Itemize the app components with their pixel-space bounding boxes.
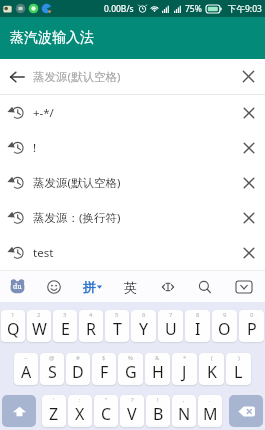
staticText: Q: [7, 318, 20, 340]
button[interactable]: @: [40, 353, 64, 385]
staticText: P: [247, 318, 257, 340]
button[interactable]: Remove item: [232, 235, 265, 270]
button[interactable]: +-*/: [0, 95, 265, 130]
staticText: 8: [196, 311, 200, 319]
staticText: V: [127, 403, 137, 425]
button[interactable]: Back: [0, 59, 265, 94]
button[interactable]: 9: [212, 310, 237, 342]
staticText: Y: [139, 318, 149, 340]
button[interactable]: 拼: [73, 271, 112, 302]
button[interactable]: Clear text: [232, 59, 265, 94]
staticText: du: [13, 282, 22, 292]
button[interactable]: ": [94, 395, 118, 427]
button[interactable]: 蒸发源：(换行符): [0, 200, 265, 235]
button[interactable]: *: [172, 353, 197, 385]
button[interactable]: 3: [53, 310, 77, 342]
button[interactable]: 2: [27, 310, 51, 342]
button[interactable]: (: [199, 353, 224, 385]
button[interactable]: !: [146, 395, 170, 427]
button[interactable]: $: [92, 353, 116, 385]
staticText: 英: [124, 279, 137, 295]
staticText: +-*/: [33, 105, 232, 121]
staticText: 6: [142, 311, 146, 319]
staticText: W: [32, 318, 47, 340]
staticText: ": [105, 396, 108, 404]
staticText: M: [203, 403, 218, 425]
staticText: 0: [250, 311, 254, 319]
button[interactable]: ,: [172, 395, 196, 427]
button[interactable]: #: [66, 353, 90, 385]
staticText: @: [49, 354, 55, 362]
staticText: 75%: [185, 3, 202, 15]
staticText: Z: [49, 403, 59, 425]
staticText: G: [125, 361, 137, 383]
button[interactable]: %: [118, 353, 143, 385]
button[interactable]: Baidu input: [0, 271, 35, 302]
staticText: 7: [169, 311, 173, 319]
staticText: B: [153, 403, 164, 425]
button[interactable]: Remove item: [232, 130, 265, 165]
staticText: E: [61, 318, 70, 340]
button[interactable]: .: [198, 395, 222, 427]
button[interactable]: ): [226, 353, 251, 385]
button[interactable]: Delete: [229, 395, 263, 427]
button[interactable]: &: [145, 353, 170, 385]
button[interactable]: test: [0, 235, 265, 270]
button[interactable]: ~: [14, 353, 38, 385]
staticText: 3: [63, 311, 67, 319]
button[interactable]: Back: [0, 59, 33, 94]
button[interactable]: Search: [186, 271, 223, 302]
staticText: C: [101, 403, 112, 425]
staticText: 5: [115, 311, 119, 319]
button[interactable]: Remove item: [232, 165, 265, 200]
staticText: K: [207, 361, 217, 383]
button[interactable]: Hide keyboard: [223, 271, 265, 302]
button[interactable]: 8: [185, 310, 210, 342]
button[interactable]: Remove item: [232, 95, 265, 130]
button[interactable]: !: [0, 130, 265, 165]
staticText: %: [128, 354, 133, 362]
staticText: :: [79, 396, 81, 404]
staticText: R: [86, 318, 96, 340]
button[interactable]: Emoji: [35, 271, 73, 302]
staticText: *: [183, 354, 187, 362]
staticText: O: [218, 318, 231, 340]
staticText: 4: [89, 311, 93, 319]
button[interactable]: 英: [112, 271, 149, 302]
button[interactable]: 0: [239, 310, 264, 342]
staticText: S: [48, 361, 57, 383]
staticText: F: [100, 361, 109, 383]
button[interactable]: Move cursor: [149, 271, 186, 302]
staticText: I: [195, 318, 201, 340]
button[interactable]: 4: [79, 310, 103, 342]
button[interactable]: 7: [158, 310, 183, 342]
button[interactable]: :: [68, 395, 92, 427]
staticText: .: [209, 396, 211, 404]
staticText: !: [157, 396, 159, 404]
staticText: 0.00B/s: [104, 3, 134, 15]
staticText: ): [238, 354, 240, 362]
staticText: 下午9:03: [228, 3, 262, 15]
staticText: N: [178, 403, 191, 425]
button[interactable]: 6: [131, 310, 156, 342]
staticText: &: [155, 354, 160, 362]
button[interactable]: 蒸发源(默认空格): [0, 165, 265, 200]
staticText: 拼: [83, 279, 96, 295]
button[interactable]: ': [42, 395, 66, 427]
staticText: X: [75, 403, 85, 425]
button[interactable]: 5: [105, 310, 129, 342]
staticText: D: [72, 361, 84, 383]
staticText: ,: [183, 396, 185, 404]
staticText: #: [76, 354, 80, 362]
staticText: 1: [11, 311, 15, 319]
staticText: ~: [24, 354, 28, 362]
button[interactable]: Shift: [2, 395, 36, 427]
staticText: ?: [131, 396, 134, 404]
button[interactable]: Remove item: [232, 200, 265, 235]
staticText: !: [33, 140, 232, 156]
staticText: $: [102, 354, 106, 362]
button[interactable]: 1: [1, 310, 25, 342]
staticText: (: [211, 354, 213, 362]
button[interactable]: ?: [120, 395, 144, 427]
staticText: J: [182, 361, 187, 383]
